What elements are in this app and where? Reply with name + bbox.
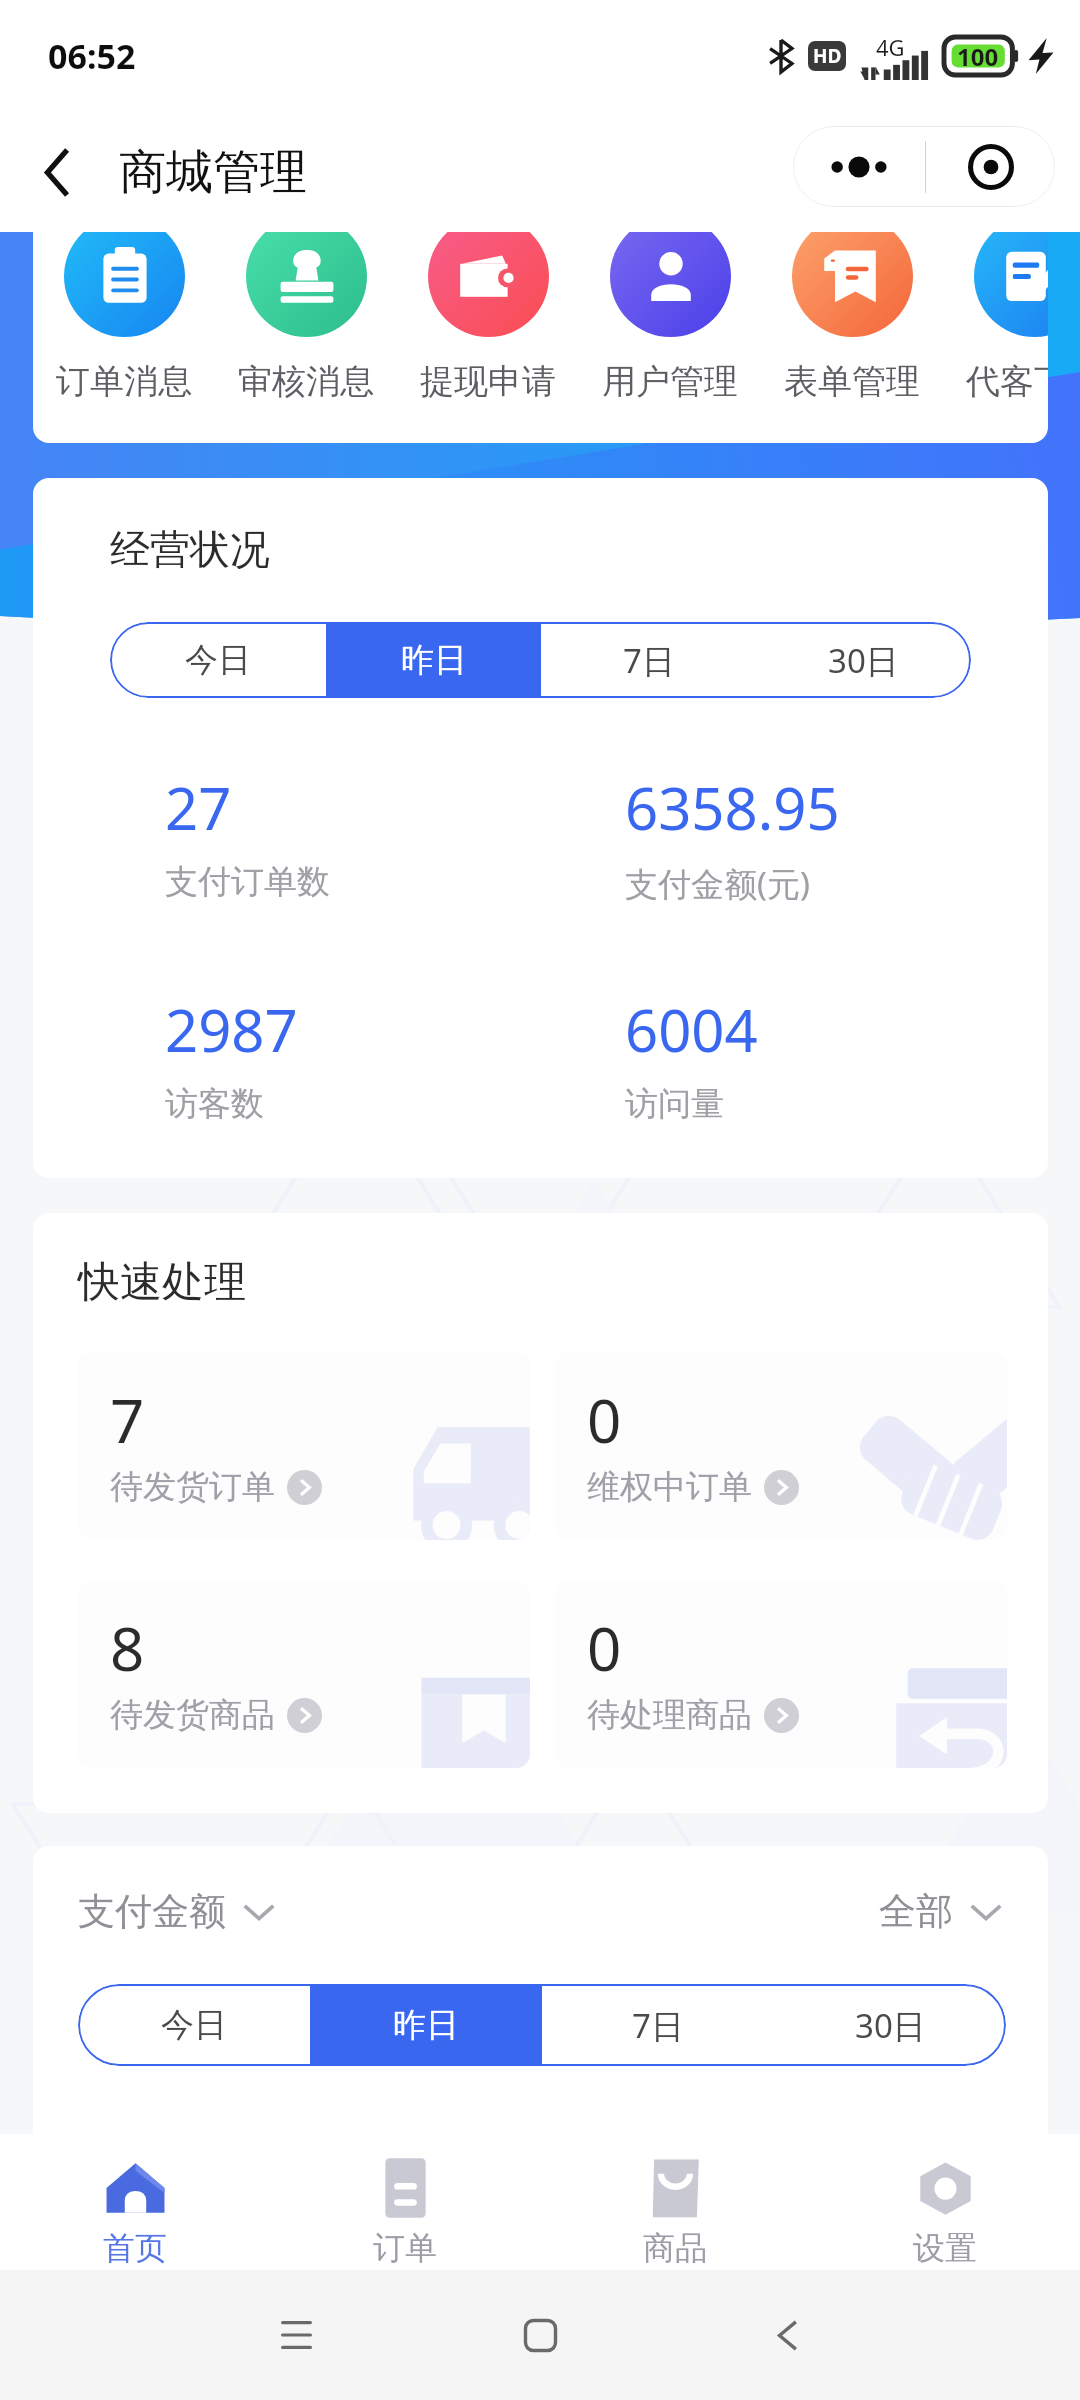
staticText: 今日 [185,639,251,681]
staticText: HD [813,43,842,69]
staticText: 经营状况 [110,524,270,574]
button[interactable]: 设置 [810,2134,1080,2270]
staticText: 商品 [643,2228,707,2268]
staticText: 30日 [828,638,899,683]
button[interactable]: Home [420,2270,660,2400]
button[interactable]: 今日 [78,1984,310,2066]
staticText: 7日 [632,2003,684,2048]
staticText: 访客数 [165,1083,264,1125]
staticText: 代客下单 [966,360,1048,403]
staticText: 30日 [855,2003,926,2048]
staticText: 待处理商品 [587,1694,752,1736]
button[interactable]: 7日 [542,1984,774,2066]
staticText: 表单管理 [784,360,920,403]
staticText: 首页 [103,2228,167,2268]
button[interactable]: 商品 [540,2134,810,2270]
button[interactable]: 昨日 [310,1984,542,2066]
staticText: 订单 [373,2228,437,2268]
button[interactable]: 昨日 [326,622,541,698]
staticText: 昨日 [393,2004,459,2046]
staticText: 设置 [913,2228,977,2268]
staticText: 27 [165,768,232,847]
button[interactable]: 表单管理 [761,232,943,443]
staticText: 6358.95 [625,768,840,847]
button[interactable]: 代客下单 [943,232,1048,443]
staticText: 支付金额 [78,1888,226,1935]
staticText: 0 [587,1379,622,1461]
staticText: 支付金额(元) [625,861,810,906]
button[interactable]: 用户管理 [579,232,761,443]
button[interactable]: 30日 [756,622,971,698]
button[interactable]: 0 [555,1352,1007,1540]
button[interactable]: 7 [78,1352,530,1540]
button[interactable]: 0 [555,1580,1007,1768]
staticText: 100 [957,40,999,73]
button[interactable]: 审核消息 [215,232,397,443]
button[interactable]: More options [793,126,925,207]
staticText: 订单消息 [56,360,192,403]
button[interactable]: 30日 [774,1984,1006,2066]
button[interactable]: Back [0,112,114,232]
button[interactable]: 7日 [541,622,756,698]
staticText: 全部 [879,1888,953,1935]
staticText: 待发货订单 [110,1466,275,1508]
staticText: 访问量 [625,1083,724,1125]
button[interactable]: Back [667,2270,907,2400]
button[interactable]: 8 [78,1580,530,1768]
staticText: 4G [876,32,905,62]
staticText: 商城管理 [119,143,307,202]
staticText: 昨日 [401,639,467,681]
staticText: 7 [110,1379,145,1461]
staticText: 8 [110,1607,145,1689]
staticText: 0 [587,1607,622,1689]
button[interactable]: Close mini program [926,126,1055,207]
staticText: 支付订单数 [165,861,330,903]
staticText: 6004 [625,990,758,1069]
button[interactable]: Recent apps [176,2270,416,2400]
button[interactable]: 提现申请 [397,232,579,443]
staticText: 用户管理 [602,360,738,403]
staticText: 待发货商品 [110,1694,275,1736]
button[interactable]: 订单 [270,2134,540,2270]
button[interactable]: 今日 [110,622,326,698]
staticText: 提现申请 [420,360,556,403]
staticText: 7日 [623,638,675,683]
staticText: 维权中订单 [587,1466,752,1508]
button[interactable]: 全部 [879,1888,1003,1935]
staticText: 06:52 [48,33,136,79]
button[interactable]: 支付金额 [78,1888,276,1935]
staticText: 2987 [165,990,298,1069]
button[interactable]: 首页 [0,2134,270,2270]
staticText: 快速处理 [78,1256,246,1309]
staticText: 今日 [161,2004,227,2046]
staticText: 审核消息 [238,360,374,403]
button[interactable]: 订单消息 [33,232,215,443]
